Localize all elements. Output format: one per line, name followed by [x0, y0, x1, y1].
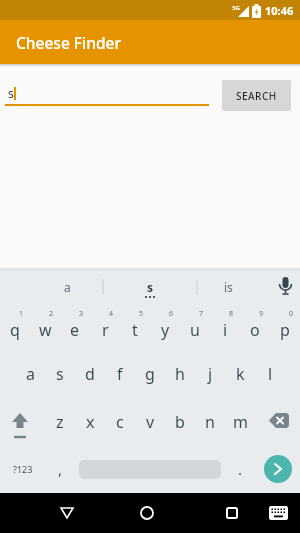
staticText: .: [238, 459, 243, 479]
staticText: g: [145, 363, 155, 385]
button[interactable]: m: [225, 398, 255, 445]
staticText: is: [224, 279, 233, 295]
button[interactable]: f: [105, 350, 135, 398]
button[interactable]: a: [37, 270, 97, 303]
staticText: s: [8, 85, 14, 101]
staticText: c: [116, 411, 124, 433]
button[interactable]: x: [75, 398, 105, 445]
button[interactable]: h: [165, 350, 195, 398]
button[interactable]: 0: [270, 303, 300, 350]
staticText: 2: [49, 309, 54, 319]
button[interactable]: .: [225, 445, 255, 493]
button[interactable]: SEARCH: [222, 80, 291, 111]
button[interactable]: [271, 270, 300, 303]
staticText: d: [85, 363, 95, 385]
button[interactable]: n: [195, 398, 225, 445]
staticText: a: [64, 279, 71, 295]
button[interactable]: z: [45, 398, 75, 445]
staticText: a: [26, 363, 35, 385]
staticText: x: [86, 411, 95, 433]
button[interactable]: ,: [45, 445, 75, 493]
staticText: f: [117, 363, 123, 385]
button[interactable]: 8: [210, 303, 240, 350]
button[interactable]: [262, 493, 294, 533]
button[interactable]: l: [255, 350, 285, 398]
staticText: ?123: [13, 463, 33, 475]
button[interactable]: [255, 445, 300, 493]
button[interactable]: [127, 493, 167, 533]
staticText: ,: [58, 459, 63, 479]
button[interactable]: a: [15, 350, 45, 398]
staticText: 0: [289, 309, 294, 319]
button[interactable]: s: [5, 85, 209, 106]
staticText: v: [146, 411, 155, 433]
staticText: w: [39, 319, 52, 341]
button[interactable]: [255, 398, 300, 445]
staticText: p: [280, 319, 290, 341]
button[interactable]: s: [45, 350, 75, 398]
staticText: q: [10, 319, 20, 341]
staticText: 3: [79, 309, 84, 319]
button[interactable]: is: [198, 270, 258, 303]
button[interactable]: 2: [30, 303, 60, 350]
staticText: s: [147, 279, 154, 295]
staticText: b: [175, 411, 185, 433]
staticText: l: [268, 363, 273, 385]
button[interactable]: [75, 445, 225, 493]
button[interactable]: j: [195, 350, 225, 398]
staticText: 1: [19, 309, 24, 319]
staticText: 10:46: [265, 3, 294, 18]
staticText: s: [56, 363, 64, 385]
staticText: h: [175, 363, 185, 385]
staticText: o: [250, 319, 260, 341]
staticText: 3G: [232, 4, 240, 12]
button[interactable]: g: [135, 350, 165, 398]
staticText: e: [70, 319, 80, 341]
staticText: m: [233, 411, 248, 433]
button[interactable]: 4: [90, 303, 120, 350]
staticText: 5: [139, 309, 144, 319]
button[interactable]: 7: [180, 303, 210, 350]
staticText: k: [236, 363, 245, 385]
staticText: r: [102, 319, 109, 341]
button[interactable]: [0, 398, 45, 445]
button[interactable]: 3: [60, 303, 90, 350]
staticText: SEARCH: [236, 89, 277, 103]
staticText: i: [223, 319, 228, 341]
button[interactable]: ?123: [0, 445, 45, 493]
button[interactable]: v: [135, 398, 165, 445]
button[interactable]: d: [75, 350, 105, 398]
staticText: z: [56, 411, 64, 433]
staticText: u: [190, 319, 200, 341]
staticText: n: [205, 411, 215, 433]
staticText: 7: [199, 309, 204, 319]
button[interactable]: [212, 493, 252, 533]
button[interactable]: s: [120, 270, 180, 303]
staticText: y: [161, 319, 170, 341]
staticText: 8: [229, 309, 234, 319]
button[interactable]: k: [225, 350, 255, 398]
staticText: j: [208, 363, 213, 385]
button[interactable]: c: [105, 398, 135, 445]
staticText: 6: [169, 309, 174, 319]
staticText: 4: [109, 309, 114, 319]
button[interactable]: 6: [150, 303, 180, 350]
button[interactable]: 5: [120, 303, 150, 350]
staticText: Cheese Finder: [16, 32, 121, 53]
button[interactable]: 9: [240, 303, 270, 350]
button[interactable]: b: [165, 398, 195, 445]
button[interactable]: [47, 493, 87, 533]
staticText: t: [132, 319, 138, 341]
button[interactable]: 1: [0, 303, 30, 350]
staticText: 9: [259, 309, 264, 319]
